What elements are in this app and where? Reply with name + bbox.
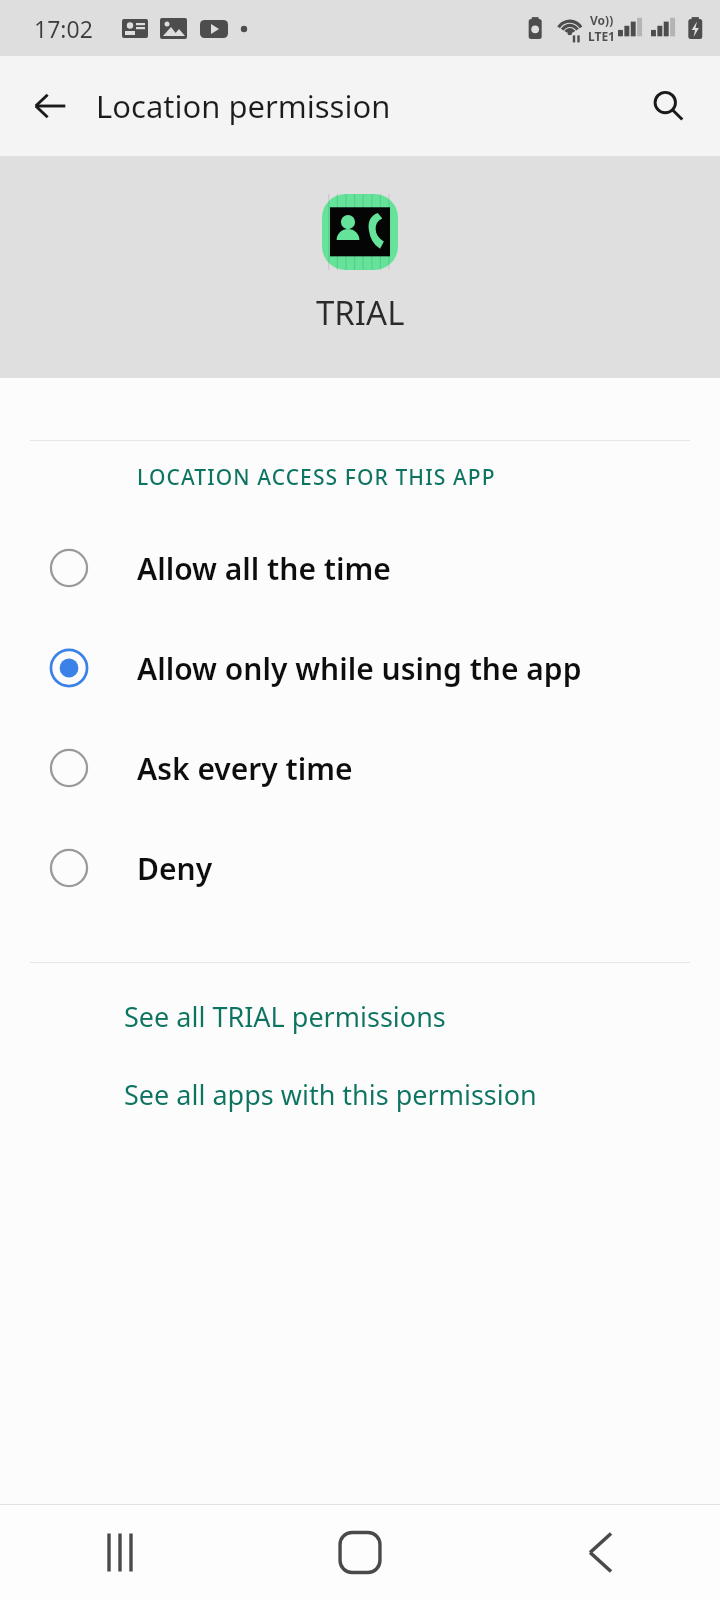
staticText: See all apps with this permission: [124, 1076, 537, 1113]
staticText: Deny: [137, 848, 213, 889]
staticText: Ask every time: [137, 748, 353, 789]
button[interactable]: See all apps with this permission: [0, 1071, 720, 1117]
button[interactable]: Back: [480, 1505, 720, 1600]
staticText: Allow only while using the app: [137, 648, 582, 689]
button[interactable]: Ask every time: [0, 718, 720, 818]
button[interactable]: Search: [636, 74, 700, 138]
button[interactable]: Allow all the time: [0, 518, 720, 618]
staticText: See all TRIAL permissions: [124, 998, 446, 1035]
staticText: LOCATION ACCESS FOR THIS APP: [137, 463, 496, 492]
staticText: Vo)): [590, 12, 614, 28]
staticText: TRIAL: [316, 290, 405, 335]
button[interactable]: Allow only while using the app: [0, 618, 720, 718]
button[interactable]: See all TRIAL permissions: [0, 993, 720, 1039]
button[interactable]: Recent apps: [0, 1505, 240, 1600]
staticText: Allow all the time: [137, 548, 391, 589]
staticText: LTE1: [588, 28, 615, 44]
button[interactable]: Deny: [0, 818, 720, 918]
staticText: Location permission: [96, 85, 391, 127]
button[interactable]: Home: [240, 1505, 480, 1600]
button[interactable]: Back: [18, 74, 82, 138]
staticText: 17:02: [34, 13, 93, 44]
